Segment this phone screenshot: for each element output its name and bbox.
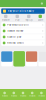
button[interactable]: Transfer (0, 15, 11, 21)
button[interactable]: Scan to pay (1, 34, 45, 40)
button[interactable]: Tab (9, 89, 18, 100)
staticText: Scan to pay (7, 35, 21, 38)
button[interactable]: Tab (37, 89, 46, 100)
button[interactable]: Notifications (40, 1, 44, 6)
staticText: Pay electricity bill (7, 23, 29, 26)
button[interactable]: Reload credit (1, 40, 45, 46)
button[interactable]: Tab (28, 89, 37, 100)
staticText: Transfer money (7, 29, 23, 32)
staticText: Home (2, 95, 8, 97)
staticText: Reload credit (7, 41, 24, 44)
staticText: More (38, 19, 43, 21)
staticText: Transfer (2, 19, 10, 21)
button[interactable]: Pay your bills easily (1, 8, 45, 14)
staticText: Top Up (25, 19, 32, 21)
button[interactable]: Pay (11, 15, 23, 21)
button[interactable]: Transfer money (1, 28, 45, 34)
button[interactable]: Promotion (1, 51, 12, 66)
button[interactable]: Promotion (38, 51, 46, 66)
button[interactable]: Tab (18, 89, 28, 100)
button[interactable]: Tab (0, 89, 9, 100)
staticText: Pay your bills easily (8, 9, 34, 13)
button[interactable]: Promotion (14, 51, 25, 66)
button[interactable]: More (34, 15, 46, 21)
button[interactable]: Pay electricity bill (1, 22, 45, 28)
staticText: Home (38, 95, 44, 97)
staticText: Home (11, 95, 17, 97)
button[interactable]: Promotion (26, 51, 37, 66)
staticText: Home (20, 95, 26, 97)
staticText: Home (29, 95, 35, 97)
button[interactable]: Top Up (23, 15, 34, 21)
staticText: Pay (15, 19, 19, 21)
